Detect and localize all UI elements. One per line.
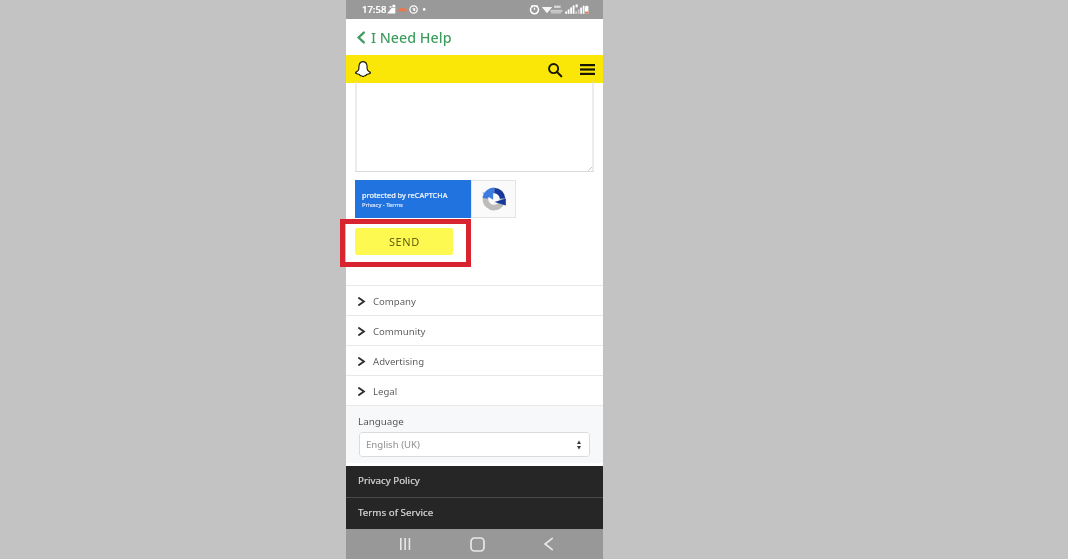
staticText: Legal [373,385,398,398]
button[interactable]: English (UK) [359,432,590,457]
staticText: 17:58 [362,3,387,16]
staticText: Community [373,325,426,338]
button[interactable]: Snapchat [355,61,371,77]
button[interactable]: Legal [346,376,603,406]
staticText: Terms of Service [358,506,434,519]
button[interactable]: Search [544,58,566,80]
button[interactable]: Back [533,529,563,559]
button[interactable]: SEND [355,228,453,255]
staticText: I Need Help [371,28,452,47]
button[interactable]: Recent apps [390,529,420,559]
other: Choose language [577,440,581,450]
button[interactable]: Privacy Policy [346,466,603,497]
staticText: Language [358,415,404,428]
button[interactable]: Community [346,316,603,346]
staticText: Advertising [373,355,425,368]
staticText: SEND [389,234,420,249]
staticText: Privacy - Terms [362,201,403,209]
button[interactable]: Advertising [346,346,603,376]
staticText: Company [373,295,416,308]
button[interactable]: Back [346,19,603,55]
staticText: Privacy Policy [358,474,420,487]
staticText: English (UK) [366,438,420,451]
button[interactable]: Company [346,286,603,316]
button[interactable]: Terms of Service [346,498,603,529]
staticText: protected by reCAPTCHA [362,190,448,200]
other: Back [356,30,366,45]
button[interactable]: Home [462,529,492,559]
button[interactable]: Menu [576,58,598,80]
